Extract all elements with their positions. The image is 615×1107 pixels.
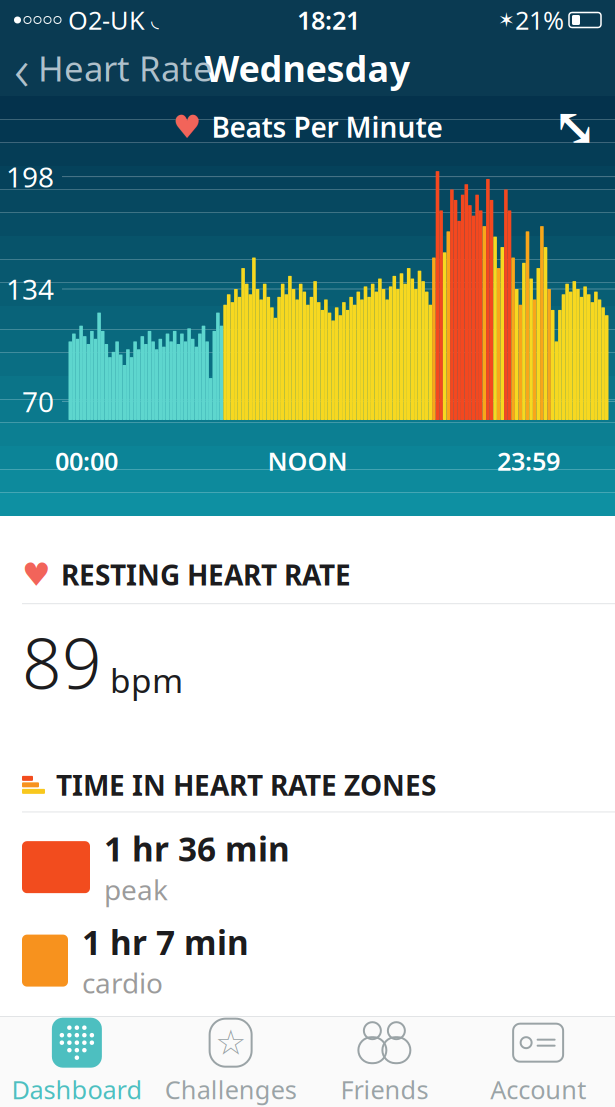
staticText: 00:00	[55, 444, 118, 478]
staticText: 23:59	[497, 444, 560, 478]
staticText: Challenges	[165, 1073, 297, 1106]
staticText: NOON	[267, 444, 347, 478]
staticText: ♥	[22, 556, 51, 593]
staticText: Dashboard	[11, 1073, 142, 1106]
staticText: ✶	[498, 9, 515, 31]
staticText: 198	[6, 158, 54, 195]
staticText: Account	[490, 1073, 586, 1106]
button[interactable]: Friends	[307, 1017, 461, 1107]
button[interactable]: Expand chart	[547, 99, 603, 155]
staticText: Heart Rate	[38, 45, 213, 91]
staticText: cardio	[82, 964, 163, 1001]
staticText: ◟	[145, 9, 159, 31]
staticText: 18:21	[297, 3, 360, 37]
staticText: 1 hr 7 min	[82, 920, 249, 964]
button[interactable]: ☆	[154, 1017, 308, 1107]
staticText: Wednesday	[204, 44, 410, 92]
staticText: Friends	[340, 1073, 428, 1106]
staticText: O2-UK	[61, 3, 145, 37]
staticText: Beats Per Minute	[211, 108, 442, 146]
staticText: 21%	[515, 3, 564, 37]
button[interactable]: Account	[461, 1017, 615, 1107]
button[interactable]: ‹	[0, 42, 227, 94]
staticText: ‹	[14, 29, 30, 107]
staticText: 134	[6, 270, 54, 308]
staticText: fat burn	[374, 1058, 480, 1095]
staticText: TIME IN HEART RATE ZONES	[56, 766, 436, 803]
staticText: 89	[22, 616, 102, 708]
button[interactable]: Dashboard	[0, 1017, 154, 1107]
staticText: 1 hr 36 min	[104, 826, 290, 871]
staticText: 70	[22, 383, 54, 420]
staticText: bpm	[110, 658, 183, 702]
staticText: 8 hr 34 min	[374, 1013, 560, 1058]
staticText: ⤡	[552, 96, 597, 158]
staticText: peak	[104, 871, 168, 908]
staticText: ♥	[172, 109, 201, 145]
staticText: RESTING HEART RATE	[61, 556, 351, 593]
staticText: ☆	[215, 1023, 246, 1062]
